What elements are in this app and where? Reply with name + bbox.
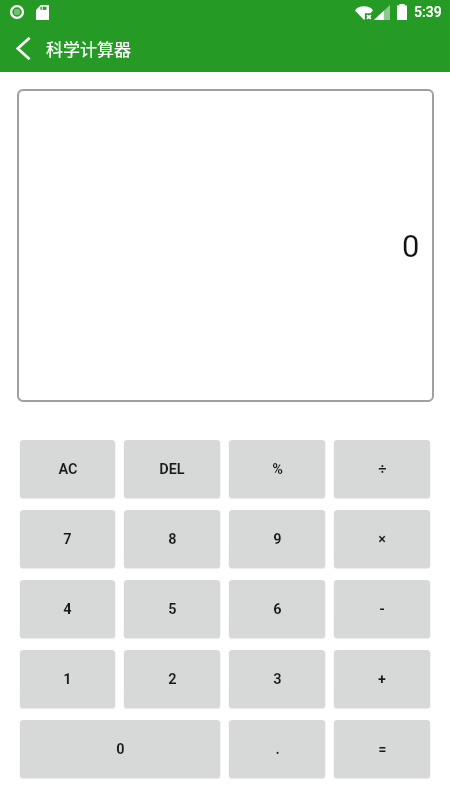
staticText: × [378, 531, 386, 548]
staticText: 4 [63, 601, 72, 618]
button[interactable]: DEL [124, 440, 220, 498]
other: Wi-Fi disconnected [355, 5, 373, 20]
button[interactable]: 4 [20, 580, 115, 638]
button[interactable]: + [334, 650, 430, 708]
staticText: 9 [273, 531, 282, 548]
staticText: 7 [63, 531, 72, 548]
button[interactable]: Back [0, 24, 46, 72]
button[interactable]: 3 [229, 650, 325, 708]
staticText: DEL [159, 461, 185, 478]
staticText: = [378, 741, 387, 758]
staticText: AC [58, 461, 78, 478]
staticText: 5 [168, 601, 177, 618]
staticText: 3 [273, 671, 282, 688]
button[interactable]: AC [20, 440, 115, 498]
button[interactable]: ÷ [334, 440, 430, 498]
button[interactable]: 2 [124, 650, 220, 708]
button[interactable]: 8 [124, 510, 220, 568]
button[interactable]: 0 [20, 720, 220, 778]
staticText: 5:39 [414, 4, 442, 20]
button[interactable]: 7 [20, 510, 115, 568]
button[interactable]: - [334, 580, 430, 638]
staticText: 1 [63, 671, 72, 688]
button[interactable]: . [229, 720, 325, 778]
button[interactable]: 9 [229, 510, 325, 568]
staticText: 6 [273, 601, 282, 618]
button[interactable]: = [334, 720, 430, 778]
staticText: 0 [116, 741, 125, 758]
staticText: 2 [168, 671, 177, 688]
staticText: ÷ [378, 461, 387, 478]
staticText: + [378, 671, 386, 688]
staticText: % [272, 461, 283, 478]
button[interactable]: × [334, 510, 430, 568]
staticText: 8 [168, 531, 177, 548]
button[interactable]: % [229, 440, 325, 498]
staticText: . [275, 741, 280, 758]
staticText: - [379, 601, 385, 618]
staticText: 科学计算器 [46, 36, 131, 61]
button[interactable]: 1 [20, 650, 115, 708]
staticText: 0 [402, 228, 420, 264]
button[interactable]: 5 [124, 580, 220, 638]
button[interactable]: 6 [229, 580, 325, 638]
